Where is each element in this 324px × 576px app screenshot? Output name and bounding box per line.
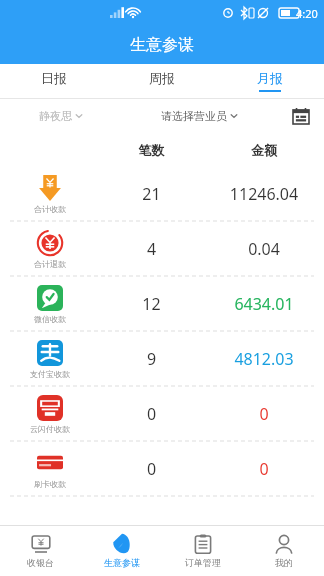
staticText: 微信收款 [34,314,66,324]
staticText: 9 [99,348,204,370]
staticText: 合计收款 [34,204,66,214]
staticText: 4:20 [296,6,318,21]
button[interactable]: Select date [278,99,324,133]
button[interactable]: 周报 [108,64,216,98]
button[interactable]: 静夜思 [0,99,121,133]
staticText: 支付宝收款 [30,369,70,379]
staticText: 生意参谋 [104,557,140,568]
staticText: 4 [99,238,204,260]
button[interactable]: 请选择营业员 [121,99,278,133]
button[interactable]: 生意参谋 [81,526,162,576]
staticText: 周报 [149,70,175,86]
staticText: 合计退款 [34,259,66,269]
staticText: 0.04 [204,238,324,260]
button[interactable]: 我的 [243,526,324,576]
staticText: 0 [204,403,324,425]
button[interactable]: 收银台 [0,526,81,576]
staticText: 请选择营业员 [161,109,227,123]
button[interactable]: 合计退款 [0,222,324,276]
staticText: 我的 [275,557,293,568]
staticText: 12 [99,293,204,315]
button[interactable]: 微信收款 [0,277,324,331]
staticText: 云闪付收款 [30,424,70,434]
staticText: 刷卡收款 [34,479,66,489]
staticText: 收银台 [27,557,54,568]
button[interactable]: 刷卡收款 [0,442,324,496]
staticText: 生意参谋 [130,35,194,55]
staticText: 笔数 [99,142,204,158]
button[interactable]: 支付宝收款 [0,332,324,386]
staticText: 日报 [41,70,67,86]
staticText: 11246.04 [204,183,324,205]
button[interactable]: 月报 [216,64,324,98]
button[interactable]: 日报 [0,64,108,98]
staticText: 0 [99,458,204,480]
staticText: 6434.01 [204,293,324,315]
staticText: 21 [99,183,204,205]
staticText: 静夜思 [39,109,72,123]
staticText: 4812.03 [204,348,324,370]
button[interactable]: 云闪付收款 [0,387,324,441]
button[interactable]: 合计收款 [0,167,324,221]
staticText: 金额 [204,142,324,158]
staticText: 0 [204,458,324,480]
button[interactable]: 订单管理 [162,526,243,576]
staticText: 月报 [257,70,283,86]
staticText: 订单管理 [185,557,221,568]
staticText: 0 [99,403,204,425]
